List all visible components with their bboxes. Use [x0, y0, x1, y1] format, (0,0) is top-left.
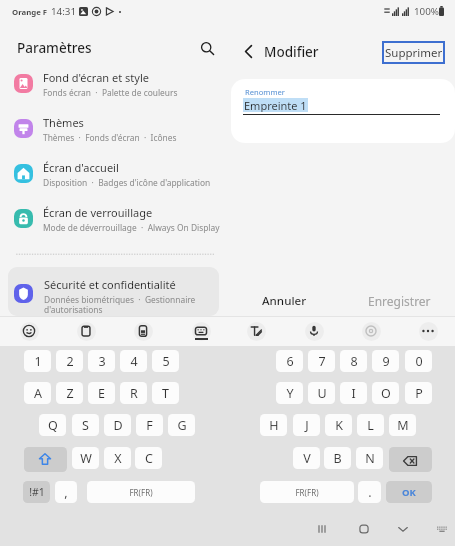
button[interactable]: I — [340, 382, 367, 404]
button[interactable]: F — [136, 414, 163, 436]
staticText: FR(FR) — [129, 487, 153, 498]
button[interactable]: Sécurité et confidentialité — [8, 267, 219, 316]
button[interactable]: S — [72, 414, 99, 436]
button[interactable]: Écran de verrouillage — [0, 195, 228, 240]
button[interactable]: Paramètres — [361, 321, 381, 341]
staticText: 9 — [382, 353, 390, 370]
button[interactable]: Masquer le clavier — [429, 516, 455, 542]
button[interactable]: 1 — [24, 350, 51, 372]
button[interactable]: K — [325, 414, 352, 436]
staticText: V — [303, 450, 311, 467]
button[interactable]: Rechercher — [195, 36, 219, 60]
staticText: Fonds écran · Palette de couleurs — [43, 87, 178, 98]
staticText: 14:31 — [51, 5, 77, 18]
button[interactable]: C — [135, 447, 162, 469]
button[interactable]: U — [308, 382, 335, 404]
button[interactable]: D — [104, 414, 131, 436]
button[interactable]: Écriture manuscrite — [246, 321, 266, 341]
button[interactable]: Écran d'accueil — [0, 150, 228, 195]
staticText: R — [130, 385, 138, 402]
button[interactable]: 2 — [56, 350, 83, 372]
staticText: Thèmes — [43, 115, 84, 130]
staticText: Supprimer — [385, 45, 443, 61]
button[interactable]: G — [168, 414, 195, 436]
button[interactable]: N — [356, 447, 383, 469]
staticText: 100% — [414, 5, 439, 18]
staticText: Z — [66, 385, 74, 402]
button[interactable]: 8 — [340, 350, 367, 372]
staticText: M — [397, 417, 409, 434]
button[interactable]: Presse-papiers — [76, 321, 96, 341]
staticText: H — [269, 417, 279, 434]
button[interactable]: Supprimer — [389, 447, 432, 472]
button[interactable]: 6 — [276, 350, 303, 372]
button[interactable]: 5 — [152, 350, 179, 372]
button[interactable]: Z — [56, 382, 83, 404]
button[interactable]: E — [88, 382, 115, 404]
button[interactable]: Y — [276, 382, 303, 404]
button[interactable]: P — [405, 382, 432, 404]
button[interactable]: Plus — [418, 321, 438, 341]
button[interactable]: H — [260, 414, 287, 436]
button[interactable]: W — [72, 447, 99, 469]
button[interactable]: A — [24, 382, 51, 404]
button[interactable]: Majuscule — [24, 447, 67, 472]
button[interactable]: Q — [39, 414, 66, 436]
button[interactable]: FR(FR) — [260, 481, 354, 503]
button[interactable]: Supprimer — [384, 43, 443, 62]
button[interactable]: 0 — [405, 350, 432, 372]
button[interactable]: B — [324, 447, 351, 469]
button[interactable]: 4 — [120, 350, 147, 372]
staticText: !#1 — [29, 485, 45, 499]
staticText: Enregistrer — [368, 293, 431, 309]
button[interactable]: FR(FR) — [87, 481, 195, 503]
button[interactable]: 7 — [308, 350, 335, 372]
button[interactable]: Thèmes — [0, 105, 228, 150]
staticText: Renommer — [245, 87, 285, 97]
staticText: 3 — [98, 353, 106, 370]
staticText: K — [335, 417, 343, 434]
button[interactable]: Annuler — [239, 288, 330, 314]
staticText: Thèmes · Fonds d'écran · Icônes — [43, 132, 177, 143]
button[interactable]: Saisie vocale — [304, 321, 324, 341]
button[interactable]: J — [293, 414, 320, 436]
staticText: OK — [402, 486, 416, 499]
button[interactable]: Enregistrer — [353, 288, 445, 314]
button[interactable]: Retour — [236, 39, 260, 63]
button[interactable]: !#1 — [23, 481, 50, 503]
button[interactable]: . — [358, 481, 381, 503]
staticText: E — [98, 385, 105, 402]
staticText: J — [305, 417, 309, 434]
button[interactable]: O — [372, 382, 399, 404]
button[interactable]: Autocollants — [133, 321, 153, 341]
button[interactable]: 3 — [88, 350, 115, 372]
button[interactable]: V — [293, 447, 320, 469]
button[interactable]: Emoji — [19, 321, 39, 341]
staticText: 5 — [162, 353, 170, 370]
button[interactable]: Accueil — [351, 516, 377, 542]
button[interactable]: T — [152, 382, 179, 404]
button[interactable]: , — [55, 481, 77, 503]
staticText: A — [34, 385, 42, 402]
staticText: X — [114, 450, 122, 467]
button[interactable]: Retour — [390, 516, 416, 542]
staticText: Sécurité et confidentialité — [44, 277, 176, 292]
button[interactable]: M — [389, 414, 416, 436]
button[interactable]: X — [104, 447, 131, 469]
button[interactable]: R — [120, 382, 147, 404]
staticText: Écran de verrouillage — [43, 205, 153, 220]
staticText: L — [367, 417, 374, 434]
staticText: Écran d'accueil — [43, 160, 119, 175]
button[interactable]: 9 — [372, 350, 399, 372]
staticText: Modifier — [264, 43, 319, 61]
staticText: Q — [48, 417, 58, 434]
button[interactable]: Fond d'écran et style — [0, 60, 228, 105]
button[interactable]: Applications récentes — [309, 516, 335, 542]
button[interactable]: Mode clavier — [191, 321, 211, 341]
button[interactable]: L — [357, 414, 384, 436]
staticText: Annuler — [262, 293, 307, 309]
staticText: 1 — [34, 353, 42, 370]
button[interactable]: OK — [386, 481, 432, 503]
staticText: 6 — [286, 353, 294, 370]
staticText: P — [415, 385, 423, 402]
